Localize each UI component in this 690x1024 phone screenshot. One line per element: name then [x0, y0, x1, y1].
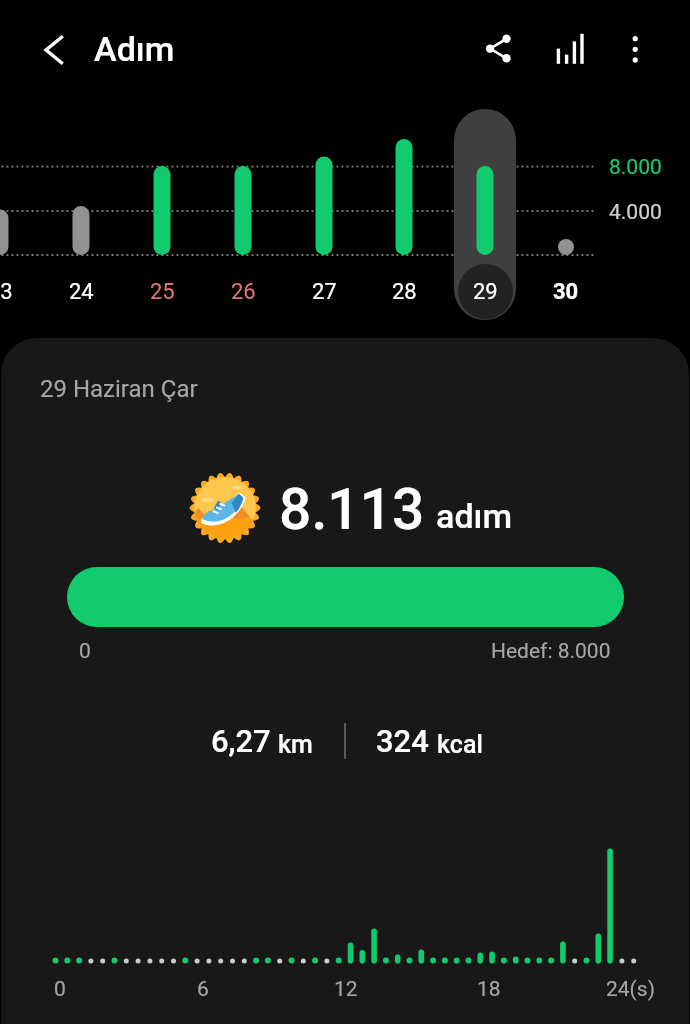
staticText: 12: [334, 977, 358, 1002]
staticText: 6,27: [211, 723, 271, 759]
button[interactable]: 24: [41, 105, 121, 310]
staticText: adım: [436, 496, 513, 536]
staticText: 8.113: [279, 476, 425, 543]
staticText: 4.000: [609, 200, 662, 225]
staticText: 27: [312, 279, 337, 305]
button[interactable]: 25: [122, 105, 202, 310]
button[interactable]: Share: [471, 22, 525, 76]
staticText: 24: [69, 279, 94, 305]
button[interactable]: Trends: [543, 22, 597, 76]
staticText: 24(s): [606, 977, 655, 1002]
button[interactable]: 26: [203, 105, 283, 310]
staticText: 8.000: [609, 155, 662, 180]
staticText: 26: [231, 279, 256, 305]
staticText: 23: [0, 279, 13, 305]
staticText: 29: [473, 279, 498, 305]
staticText: kcal: [437, 730, 483, 759]
staticText: 18: [477, 977, 501, 1002]
button[interactable]: 0: [51, 559, 640, 669]
button[interactable]: More options: [608, 22, 662, 76]
button[interactable]: 29 Haziran Çar: [21, 360, 441, 412]
staticText: 6: [197, 977, 209, 1002]
staticText: 30: [553, 279, 579, 305]
staticText: 0: [54, 977, 66, 1002]
button[interactable]: 6,27: [191, 710, 511, 772]
button[interactable]: 30: [526, 105, 606, 310]
button[interactable]: 27: [284, 105, 364, 310]
staticText: Adım: [94, 29, 175, 69]
button[interactable]: Back: [28, 23, 82, 77]
staticText: Hedef: 8.000: [491, 639, 611, 664]
staticText: km: [278, 730, 313, 759]
button[interactable]: 8.113: [171, 463, 531, 555]
staticText: 324: [376, 723, 429, 759]
button[interactable]: 29: [445, 105, 525, 310]
staticText: 0: [79, 639, 91, 664]
staticText: 29 Haziran Çar: [40, 375, 198, 403]
button[interactable]: 23: [0, 105, 40, 310]
button[interactable]: 28: [364, 105, 444, 310]
staticText: 28: [392, 279, 417, 305]
staticText: 25: [150, 279, 175, 305]
